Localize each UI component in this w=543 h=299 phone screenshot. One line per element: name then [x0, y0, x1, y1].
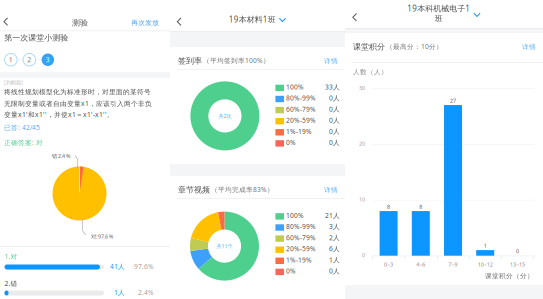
staticText: 1人 — [329, 255, 340, 264]
staticText: 7~9 — [448, 261, 457, 268]
staticText: 8 — [387, 203, 390, 210]
button[interactable]: 详情 — [321, 183, 341, 197]
staticText: 3人 — [329, 222, 340, 231]
staticText: 再次发放 — [131, 19, 159, 27]
staticText: 6人 — [329, 244, 340, 253]
staticText: （平均完成率83%） — [211, 185, 274, 194]
staticText: 2.错 — [4, 279, 17, 288]
staticText: 错 2.4 % — [52, 152, 70, 160]
staticText: 测验 — [72, 18, 88, 28]
staticText: 1.对 — [4, 252, 17, 261]
staticText: 60%-79% — [286, 233, 316, 242]
staticText: 20%-59% — [286, 244, 316, 253]
staticText: 20 — [359, 140, 365, 147]
staticText: 章节视频 — [178, 185, 210, 195]
button[interactable]: Back — [0, 14, 16, 29]
staticText: 已答: 42/45 — [4, 123, 40, 132]
staticText: 0~3 — [384, 261, 393, 268]
staticText: 0% — [286, 266, 296, 275]
staticText: 详情 — [522, 43, 536, 51]
staticText: 0人 — [329, 105, 340, 114]
staticText: 0人 — [329, 116, 340, 125]
staticText: 2.4% — [138, 288, 154, 297]
staticText: 对: 97.6 % — [91, 233, 113, 240]
staticText: 详情 — [324, 57, 338, 65]
staticText: 97.6% — [134, 262, 154, 271]
staticText: 27 — [450, 97, 456, 104]
staticText: 2 — [27, 55, 31, 64]
staticText: 21人 — [325, 211, 340, 220]
staticText: 100% — [286, 211, 304, 220]
staticText: 10~12 — [478, 261, 493, 268]
staticText: 60%-79% — [286, 105, 316, 114]
staticText: 20%-59% — [286, 116, 316, 125]
staticText: 0% — [286, 138, 296, 147]
button[interactable]: 详情 — [321, 54, 341, 68]
staticText: （平均签到率100%） — [203, 56, 270, 65]
staticText: 80%-99% — [286, 222, 316, 231]
staticText: 0 — [516, 248, 519, 255]
staticText: 0人 — [329, 266, 340, 275]
button[interactable]: Back — [170, 14, 189, 29]
staticText: 3 — [46, 55, 50, 64]
staticText: [判断题] — [4, 79, 23, 86]
staticText: 19本材料1班 — [229, 14, 276, 25]
staticText: 1人 — [114, 288, 125, 297]
staticText: 1 — [484, 242, 487, 249]
button[interactable]: 详情 — [519, 40, 539, 54]
staticText: 无限制变量或者自由变量x1，应该引入两个非负 — [4, 99, 152, 108]
staticText: 41人 — [110, 262, 125, 271]
staticText: 0 — [362, 252, 365, 259]
staticText: （最高分：10分） — [386, 42, 443, 51]
button[interactable]: 再次发放 — [128, 16, 162, 30]
staticText: 共2次 — [218, 112, 231, 119]
staticText: 课堂积分 — [353, 42, 385, 52]
staticText: 1%-19% — [286, 127, 312, 136]
staticText: 1 — [9, 55, 13, 64]
staticText: 33人 — [325, 82, 340, 91]
staticText: 共11个 — [216, 243, 232, 250]
staticText: 30 — [359, 84, 365, 91]
staticText: 0人 — [329, 138, 340, 147]
staticText: 100% — [286, 82, 304, 91]
staticText: 80%-99% — [286, 94, 316, 102]
staticText: 13~15 — [510, 261, 525, 268]
staticText: 详情 — [324, 186, 338, 194]
staticText: 变量x1'和x1''，并使x1＝x1'-x1''。 — [4, 110, 114, 119]
staticText: 将线性规划模型化为标准形时，对里面的某符号 — [4, 88, 151, 96]
staticText: 正确答案: 对 — [4, 138, 43, 147]
staticText: 签到率 — [178, 56, 202, 66]
staticText: 4~6 — [416, 261, 425, 268]
staticText: 0人 — [329, 94, 340, 102]
staticText: 2人 — [329, 233, 340, 242]
staticText: 0人 — [329, 127, 340, 136]
staticText: 人数（人） — [353, 68, 388, 76]
staticText: 1%-19% — [286, 255, 312, 264]
staticText: 课堂积分（分） — [485, 272, 534, 280]
staticText: 8 — [419, 203, 422, 210]
staticText: 第一次课堂小测验 — [4, 33, 68, 43]
button[interactable]: Back — [345, 9, 365, 25]
staticText: 10 — [359, 196, 365, 203]
staticText: 19本科机械电子1 — [407, 3, 470, 14]
staticText: 班 — [435, 14, 443, 23]
